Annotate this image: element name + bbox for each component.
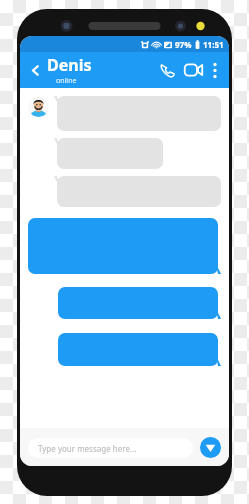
button[interactable]: More options: [207, 62, 223, 78]
staticText: 11:51: [203, 39, 224, 50]
button[interactable]: [28, 218, 221, 274]
button[interactable]: Send: [200, 437, 221, 458]
button[interactable]: [58, 333, 221, 366]
button[interactable]: Back: [26, 61, 44, 79]
staticText: Denis: [47, 54, 92, 76]
button[interactable]: Video call: [181, 58, 205, 82]
button[interactable]: Denis: [47, 54, 156, 86]
button[interactable]: Type your message here...: [28, 438, 193, 458]
button[interactable]: Call: [156, 59, 178, 81]
button[interactable]: [54, 176, 221, 207]
staticText: Type your message here...: [38, 443, 137, 454]
staticText: online: [56, 76, 77, 86]
staticText: 97%: [175, 39, 192, 50]
button[interactable]: [54, 138, 163, 169]
button[interactable]: [58, 287, 221, 319]
button[interactable]: [54, 96, 221, 131]
